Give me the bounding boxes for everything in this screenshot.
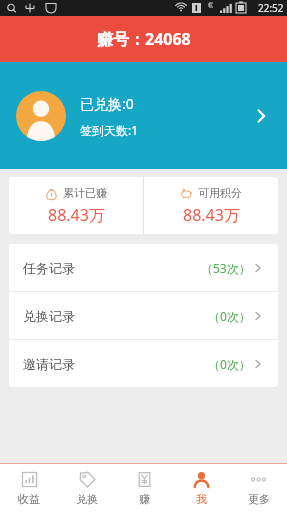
button[interactable]: 兑换记录	[9, 292, 278, 339]
button[interactable]: 我	[173, 464, 230, 512]
staticText: 赚号：24068	[97, 28, 191, 50]
button[interactable]: 赚	[116, 464, 173, 512]
staticText: 任务记录	[23, 260, 75, 276]
button[interactable]: 可用积分	[144, 177, 278, 234]
staticText: （0次）	[208, 308, 251, 324]
staticText: 赚	[139, 492, 150, 506]
button[interactable]: 更多	[230, 464, 287, 512]
staticText: 收益	[18, 492, 40, 506]
button[interactable]: 任务记录	[9, 244, 278, 291]
staticText: 88.43万	[183, 204, 240, 226]
button[interactable]: 已兑换:0	[0, 62, 287, 169]
staticText: 邀请记录	[23, 356, 75, 372]
staticText: （53次）	[201, 260, 251, 276]
staticText: 签到天数:1	[80, 122, 139, 138]
staticText: 我	[196, 492, 207, 506]
button[interactable]: 收益	[0, 464, 58, 512]
button[interactable]: 累计已赚	[9, 177, 143, 234]
staticText: （0次）	[208, 356, 251, 372]
staticText: 已兑换:0	[80, 94, 134, 113]
staticText: 兑换	[76, 492, 98, 506]
staticText: 22:52	[258, 1, 284, 15]
button[interactable]: 邀请记录	[9, 340, 278, 387]
button[interactable]: 兑换	[58, 464, 116, 512]
staticText: 累计已赚	[63, 186, 107, 200]
staticText: 更多	[248, 492, 270, 506]
staticText: 可用积分	[198, 186, 242, 200]
staticText: 兑换记录	[23, 308, 75, 324]
staticText: 88.43万	[48, 204, 105, 226]
